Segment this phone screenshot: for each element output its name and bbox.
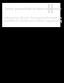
- staticText: Lorem ipsum dolor sit amet consectetur: [5, 7, 62, 11]
- staticText: incididunt ut labore et dolore magna ali…: [4, 19, 62, 23]
- staticText: adipiscing elit sed do eiusmod tempor in: [4, 16, 62, 20]
